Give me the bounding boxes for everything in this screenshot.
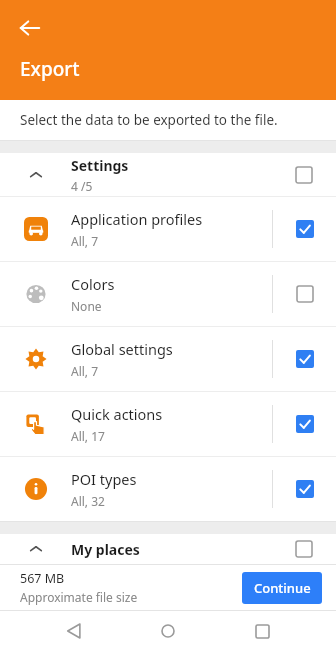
staticText: 567 MB — [20, 570, 65, 587]
button[interactable]: Application profiles — [0, 197, 336, 261]
button[interactable]: Home — [150, 613, 186, 649]
staticText: Application profiles — [71, 209, 203, 229]
staticText: None — [71, 298, 102, 314]
button[interactable]: Toggle POI types — [273, 457, 336, 521]
staticText: All, 7 — [71, 363, 99, 379]
staticText: All, 17 — [71, 428, 105, 444]
staticText: Approximate file size — [20, 589, 138, 605]
staticText: All, 32 — [71, 493, 105, 509]
staticText: 4 /5 — [71, 178, 93, 194]
staticText: My places — [71, 540, 140, 559]
button[interactable]: Recent apps — [244, 613, 280, 649]
button[interactable]: Toggle Quick actions — [273, 392, 336, 456]
button[interactable]: Toggle Global settings — [273, 327, 336, 391]
button[interactable]: Continue — [242, 572, 322, 604]
staticText: Continue — [254, 579, 311, 597]
staticText: POI types — [71, 469, 137, 489]
staticText: Quick actions — [71, 404, 163, 424]
button[interactable]: Toggle Colors — [273, 262, 336, 326]
button[interactable]: Global settings — [0, 327, 336, 391]
button[interactable]: Colors — [0, 262, 336, 326]
staticText: Select the data to be exported to the fi… — [20, 111, 278, 129]
staticText: All, 7 — [71, 233, 99, 249]
button[interactable]: Back — [10, 8, 50, 48]
button[interactable]: POI types — [0, 457, 336, 521]
button[interactable]: Quick actions — [0, 392, 336, 456]
staticText: Colors — [71, 274, 115, 294]
staticText: Settings — [71, 156, 129, 175]
button[interactable]: Settings — [0, 153, 336, 196]
staticText: Export — [20, 56, 80, 82]
button[interactable]: Back — [56, 613, 92, 649]
staticText: Global settings — [71, 339, 173, 359]
button[interactable]: My places — [0, 534, 336, 564]
button[interactable]: Toggle Application profiles — [273, 197, 336, 261]
